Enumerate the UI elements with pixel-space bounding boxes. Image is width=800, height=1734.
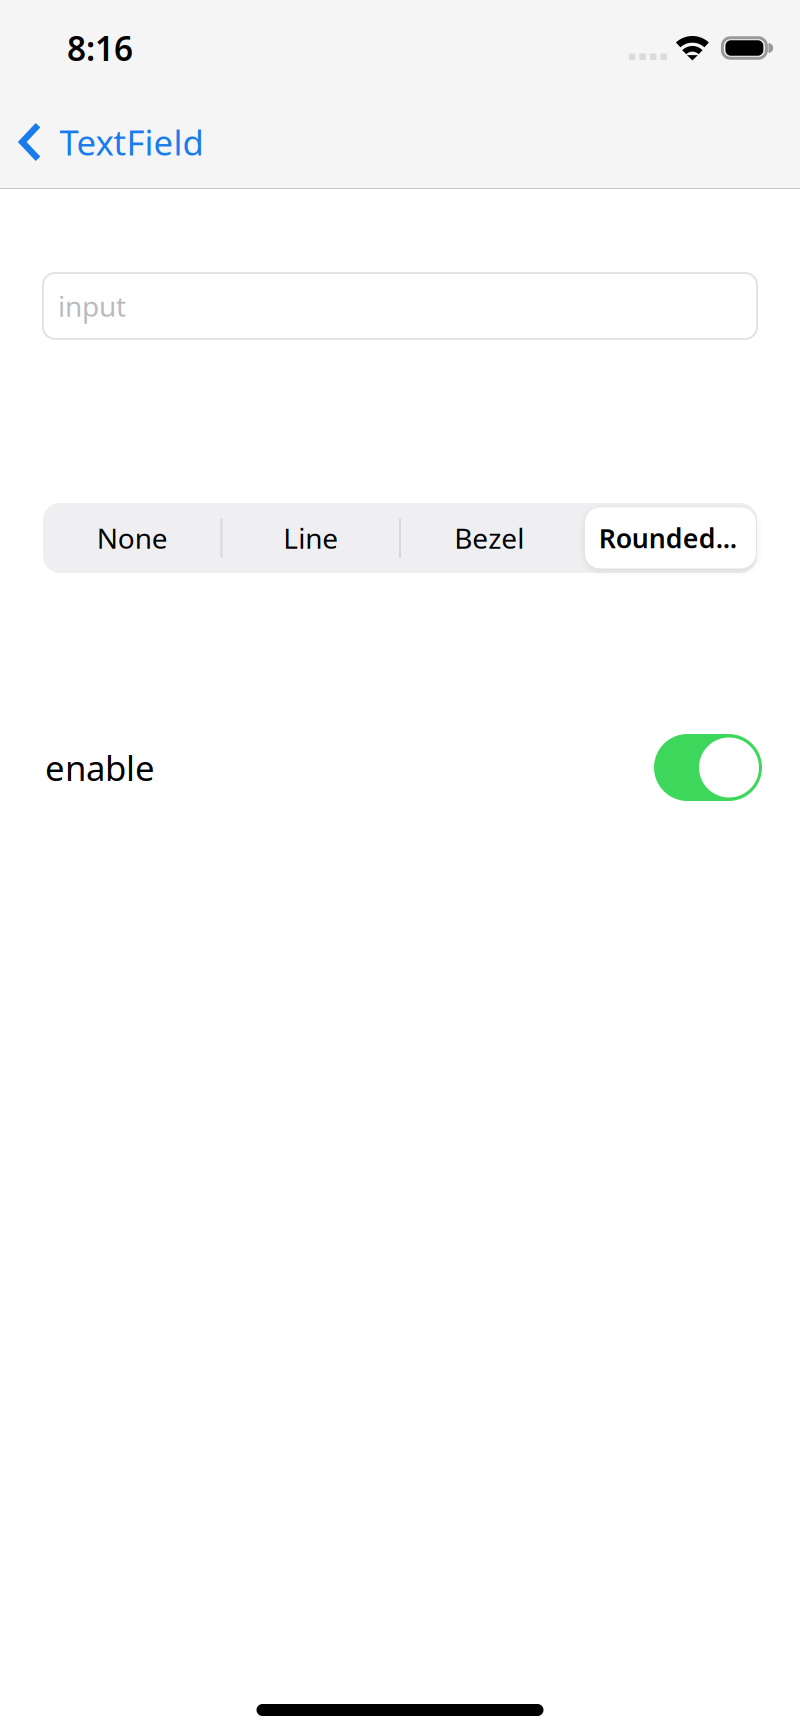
button[interactable]: Line: [221, 503, 400, 573]
button[interactable]: Bezel: [400, 503, 578, 573]
button[interactable]: None: [43, 503, 221, 573]
staticText: enable: [45, 744, 155, 790]
staticText: None: [97, 519, 168, 557]
button[interactable]: enable: [654, 734, 762, 801]
staticText: 8:16: [67, 26, 133, 70]
staticText: input: [58, 287, 126, 325]
staticText: Line: [283, 519, 338, 557]
button[interactable]: Rounded...: [578, 503, 757, 573]
button[interactable]: TextField: [0, 96, 215, 188]
staticText: Rounded...: [599, 520, 737, 556]
staticText: Bezel: [454, 519, 524, 557]
staticText: TextField: [59, 119, 203, 165]
